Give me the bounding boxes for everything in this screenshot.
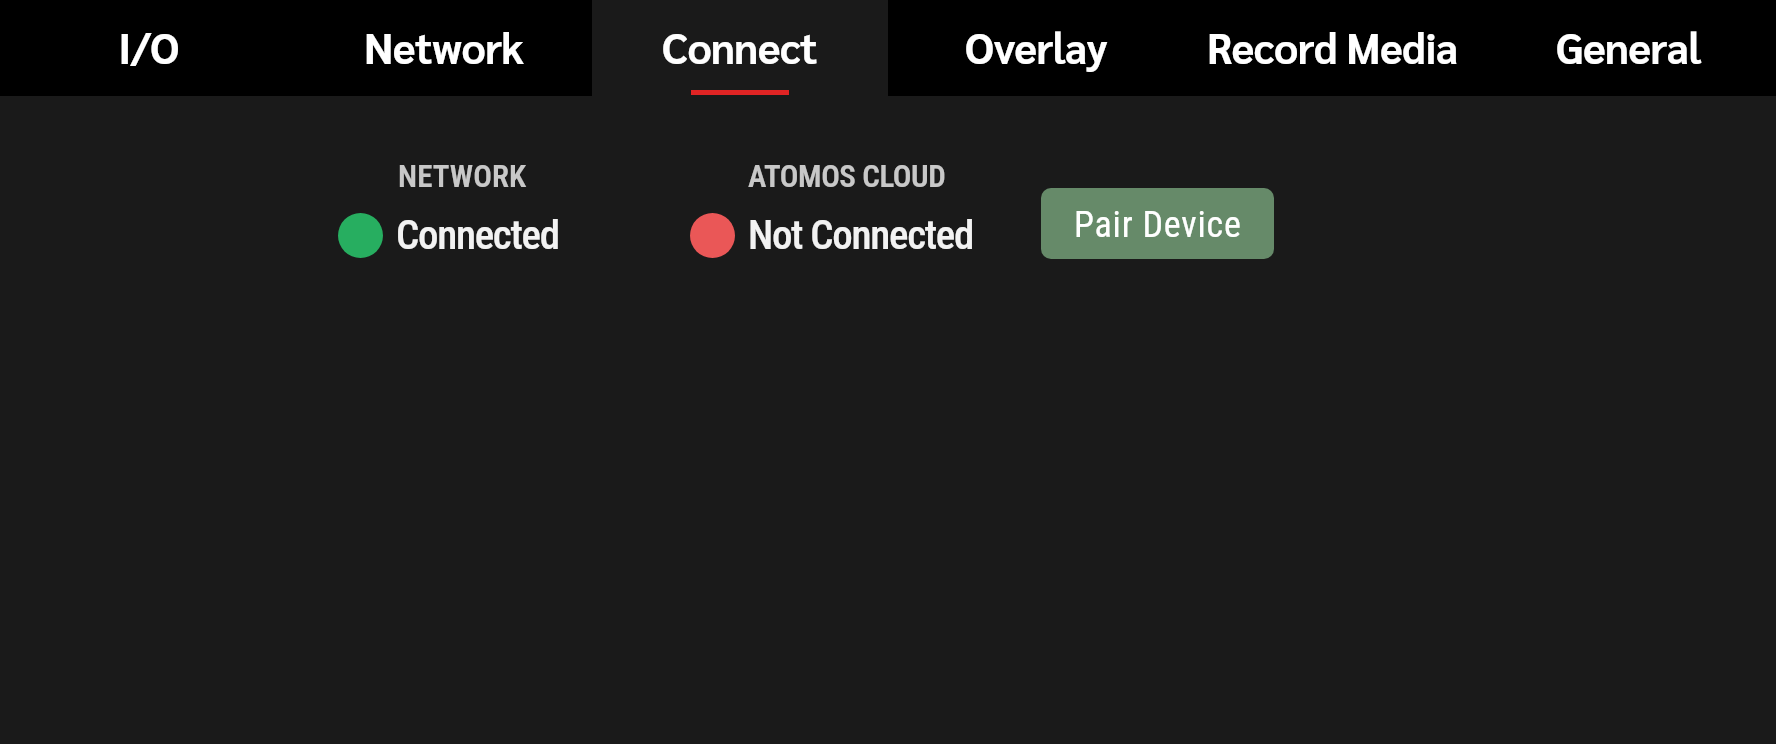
button[interactable]: I/O (0, 0, 296, 96)
button[interactable]: Overlay (888, 0, 1184, 96)
button[interactable]: Record Media (1184, 0, 1480, 96)
staticText: NETWORK (398, 158, 527, 194)
staticText: Connected (396, 211, 559, 259)
other: Network connected (338, 213, 383, 258)
button[interactable]: Network (296, 0, 592, 96)
staticText: Pair Device (1074, 204, 1242, 246)
button[interactable]: Pair Device (1041, 188, 1274, 259)
staticText: I/O (118, 19, 179, 74)
staticText: General (1556, 19, 1701, 74)
button[interactable]: Connect (592, 0, 888, 96)
staticText: Not Connected (748, 211, 973, 259)
staticText: Overlay (965, 19, 1108, 74)
staticText: Network (364, 19, 524, 74)
staticText: Connect (662, 19, 818, 74)
staticText: Record Media (1207, 19, 1458, 74)
other: Atomos Cloud not connected (690, 213, 735, 258)
staticText: ATOMOS CLOUD (748, 158, 946, 194)
button[interactable]: General (1480, 0, 1776, 96)
